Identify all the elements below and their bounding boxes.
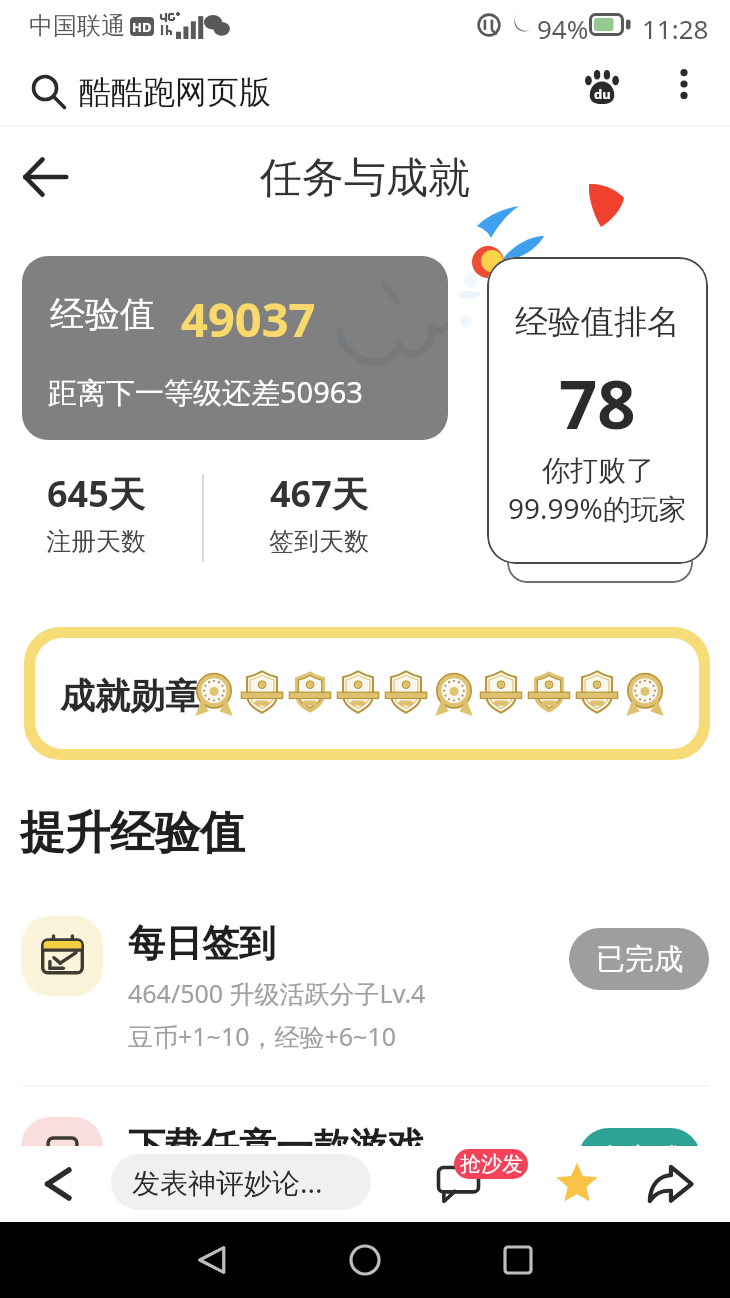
staticText: 抢沙发 <box>460 1151 523 1177</box>
staticText: 经验值排名 <box>515 301 680 343</box>
other: Search <box>31 74 67 110</box>
staticText: 去完成 <box>596 1141 683 1178</box>
staticText: 发表神评妙论... <box>132 1163 323 1201</box>
button[interactable]: 每日签到 <box>0 900 730 1085</box>
button[interactable]: Back <box>184 1232 240 1288</box>
button[interactable]: Search <box>31 72 271 112</box>
staticText: 成就勋章 <box>60 674 200 718</box>
staticText: 78 <box>559 357 636 448</box>
staticText: 0/1 下载任意一款游戏 <box>128 1177 373 1211</box>
button[interactable]: Achievement badge <box>191 669 237 715</box>
button[interactable]: Baidu search <box>578 63 626 111</box>
staticText: 49037 <box>181 287 316 351</box>
button[interactable]: 成就勋章 <box>35 638 699 749</box>
staticText: 酷酷跑网页版 <box>79 72 271 112</box>
button[interactable]: Favorite <box>552 1155 602 1213</box>
staticText: HD <box>132 18 152 36</box>
button[interactable]: 已完成 <box>569 928 709 990</box>
button[interactable]: Achievement badge <box>287 669 333 715</box>
button[interactable]: 发表神评妙论... <box>111 1154 371 1210</box>
button[interactable]: Comment <box>430 1156 486 1212</box>
staticText: 94% <box>537 11 589 46</box>
button[interactable]: 去完成 <box>578 1128 701 1190</box>
button[interactable]: Home <box>337 1232 393 1288</box>
staticText: 豆币+1~10，经验+6~10 <box>128 1019 397 1053</box>
button[interactable]: Achievement badge <box>574 669 620 715</box>
button[interactable]: 经验值排名 <box>487 257 708 564</box>
button[interactable]: Achievement badge <box>478 669 524 715</box>
staticText: 645天 <box>47 469 145 518</box>
staticText: 11:28 <box>642 11 709 46</box>
staticText: 你打败了 <box>542 453 654 488</box>
button[interactable]: Back <box>34 1157 82 1211</box>
button[interactable]: 经验值 <box>22 256 448 440</box>
staticText: 距离下一等级还差50963 <box>48 372 363 412</box>
staticText: 467天 <box>270 469 368 518</box>
staticText: 注册天数 <box>46 526 146 557</box>
button[interactable]: Achievement badge <box>335 669 381 715</box>
button[interactable]: Recent apps <box>490 1232 546 1288</box>
button[interactable]: Achievement badge <box>383 669 429 715</box>
button[interactable]: 下载任意一款游戏 <box>0 1101 730 1286</box>
staticText: 下载任意一款游戏 <box>128 1123 424 1170</box>
button[interactable]: Achievement badge <box>622 669 668 715</box>
staticText: 签到天数 <box>269 526 369 557</box>
button[interactable]: Share <box>645 1156 695 1212</box>
staticText: 任务与成就 <box>260 152 470 205</box>
staticText: 464/500 升级活跃分子Lv.4 <box>128 976 426 1010</box>
staticText: 已完成 <box>596 941 683 978</box>
button[interactable]: More options <box>662 62 706 106</box>
staticText: 经验值 <box>50 292 155 336</box>
button[interactable]: Back <box>18 149 74 205</box>
button[interactable]: 645天 <box>46 469 146 557</box>
button[interactable]: Achievement badge <box>526 669 572 715</box>
staticText: 99.99%的玩家 <box>508 489 687 527</box>
staticText: 中国联通 <box>29 11 125 41</box>
button[interactable]: 提升经验值 <box>20 805 245 862</box>
staticText: du <box>594 85 611 103</box>
button[interactable]: 467天 <box>269 469 369 557</box>
staticText: 每日签到 <box>128 920 276 967</box>
button[interactable]: Achievement badge <box>431 669 477 715</box>
button[interactable]: Achievement badge <box>239 669 285 715</box>
